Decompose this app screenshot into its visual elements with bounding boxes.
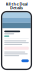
staticText: All the Deal xyxy=(5,1,27,7)
button[interactable]: Continue xyxy=(21,59,29,62)
staticText: Details xyxy=(10,5,23,10)
